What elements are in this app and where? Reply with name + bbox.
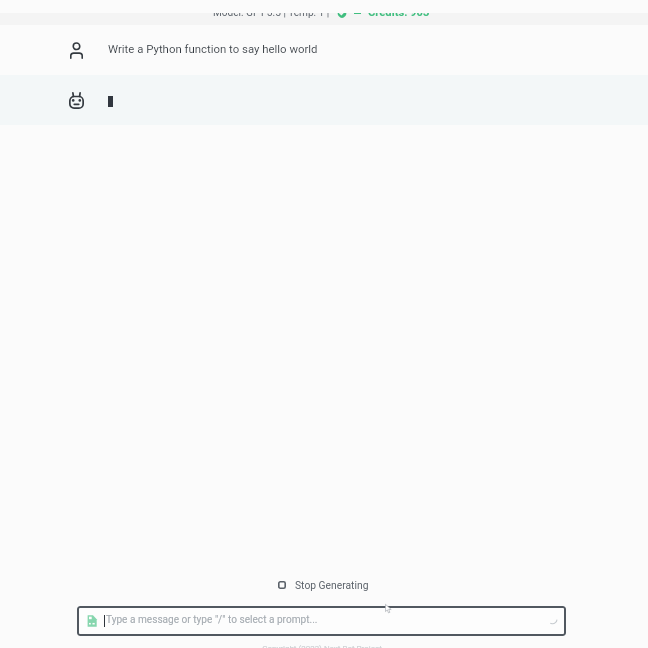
staticText: Type a message or type "/" to select a p… (106, 614, 318, 626)
staticText: Credits: 903 (368, 6, 430, 19)
button[interactable]: Model: GPT-3.5 | Temp: 1 | (213, 6, 430, 19)
staticText: Copyright (2023) Next Bot Project (262, 644, 382, 648)
other: Assistant (69, 92, 84, 109)
staticText: Write a Python function to say hello wor… (108, 42, 318, 55)
button[interactable]: Stop Generating (274, 577, 373, 593)
button[interactable]: Assistant (0, 75, 648, 125)
other: User (70, 42, 83, 59)
button[interactable]: User (0, 25, 648, 75)
staticText: Model: GPT-3.5 | Temp: 1 | (213, 7, 330, 19)
staticText: Stop Generating (295, 579, 369, 591)
button[interactable]: Type a message or type "/" to select a p… (77, 606, 566, 636)
